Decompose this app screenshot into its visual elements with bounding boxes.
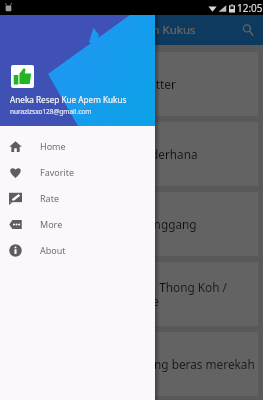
button[interactable]: More: [0, 211, 155, 237]
button[interactable]: Home: [0, 133, 155, 159]
staticText: sep Kue Apem Kukus tepung beras merekah: [9, 356, 255, 372]
button[interactable]: Rate: [0, 185, 155, 211]
button[interactable]: Apem Kukus Khanom Thong Koh / Thai Cake: [5, 262, 258, 326]
button[interactable]: Apem Kukus Panggang: [5, 192, 258, 256]
staticText: Apem Kukus Khanom Thong Koh / Thai Cake: [37, 279, 227, 309]
button[interactable]: Apem Kukus Sederhana: [5, 122, 258, 186]
staticText: Aneka Resep Kue Apem Kukus: [10, 94, 127, 105]
staticText: 12:05: [237, 1, 263, 15]
staticText: About: [40, 244, 66, 256]
button[interactable]: Mentega Butter: [5, 52, 258, 116]
staticText: Favorite: [40, 166, 75, 178]
button[interactable]: sep Kue Apem Kukus tepung beras merekah: [5, 332, 258, 396]
staticText: Rate: [40, 192, 59, 204]
button[interactable]: About: [0, 237, 155, 263]
staticText: Aneka Resep Kue Apem Kukus: [32, 22, 196, 38]
staticText: More: [40, 218, 63, 230]
staticText: Apem Kukus Sederhana: [65, 146, 198, 162]
staticText: Mentega Butter: [88, 76, 176, 92]
staticText: Home: [40, 140, 66, 152]
button[interactable]: Favorite: [0, 159, 155, 185]
button[interactable]: Search: [236, 18, 260, 42]
staticText: nurazizsxo128@gmail.com: [10, 107, 92, 116]
staticText: Apem Kukus Panggang: [67, 216, 197, 232]
